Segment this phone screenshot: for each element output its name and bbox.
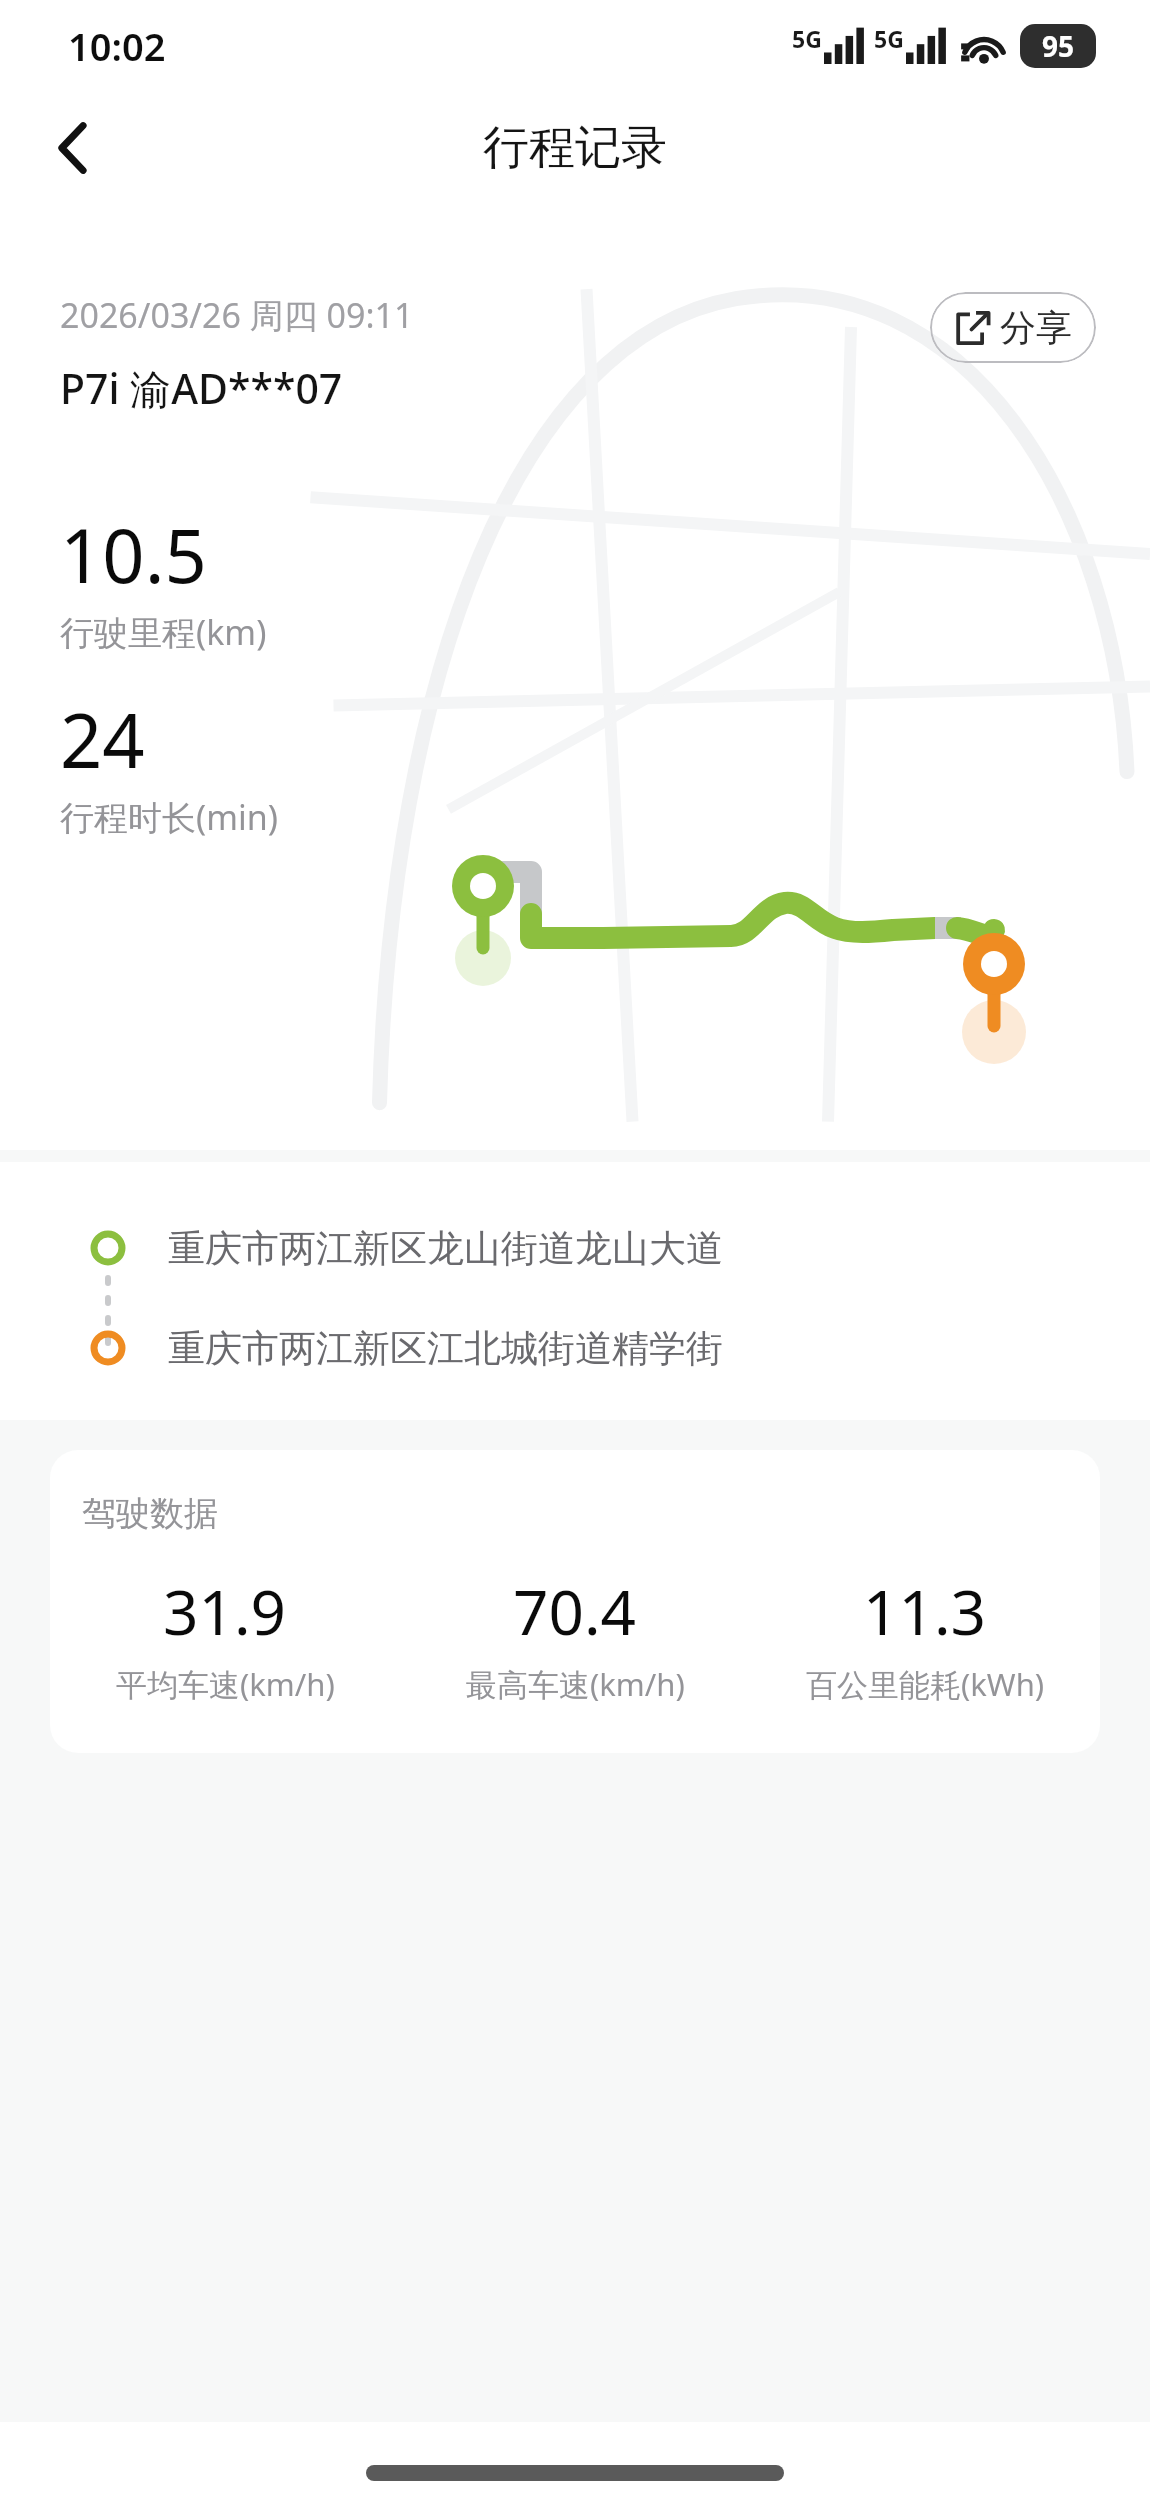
staticText: P7i 渝AD***07 — [60, 360, 343, 416]
staticText: 分享 — [1000, 305, 1072, 350]
staticText: 平均车速(km/h) — [116, 1663, 335, 1705]
staticText: 驾驶数据 — [82, 1492, 218, 1535]
staticText: 70.4 — [513, 1569, 637, 1653]
staticText: 10:02 — [68, 20, 166, 72]
staticText: 重庆市两江新区江北城街道精学街 — [168, 1325, 723, 1372]
staticText: 5G — [792, 23, 822, 54]
staticText: 重庆市两江新区龙山街道龙山大道 — [168, 1225, 723, 1272]
staticText: 行驶里程(km) — [60, 609, 267, 655]
staticText: 10.5 — [60, 504, 207, 605]
button[interactable]: 分享 — [930, 292, 1096, 363]
staticText: 5G — [874, 23, 904, 54]
staticText: 最高车速(km/h) — [466, 1663, 685, 1705]
staticText: 行程时长(min) — [60, 794, 278, 840]
staticText: 百公里能耗(kWh) — [806, 1663, 1045, 1705]
staticText: 11.3 — [863, 1569, 987, 1653]
staticText: 95 — [1042, 27, 1075, 65]
staticText: 行程记录 — [483, 119, 667, 177]
button[interactable]: 驾驶数据 — [50, 1450, 1100, 1753]
staticText: 24 — [60, 689, 145, 790]
staticText: 31.9 — [163, 1569, 287, 1653]
button[interactable]: Back — [34, 109, 112, 187]
staticText: 2026/03/26 周四 09:11 — [60, 292, 414, 338]
